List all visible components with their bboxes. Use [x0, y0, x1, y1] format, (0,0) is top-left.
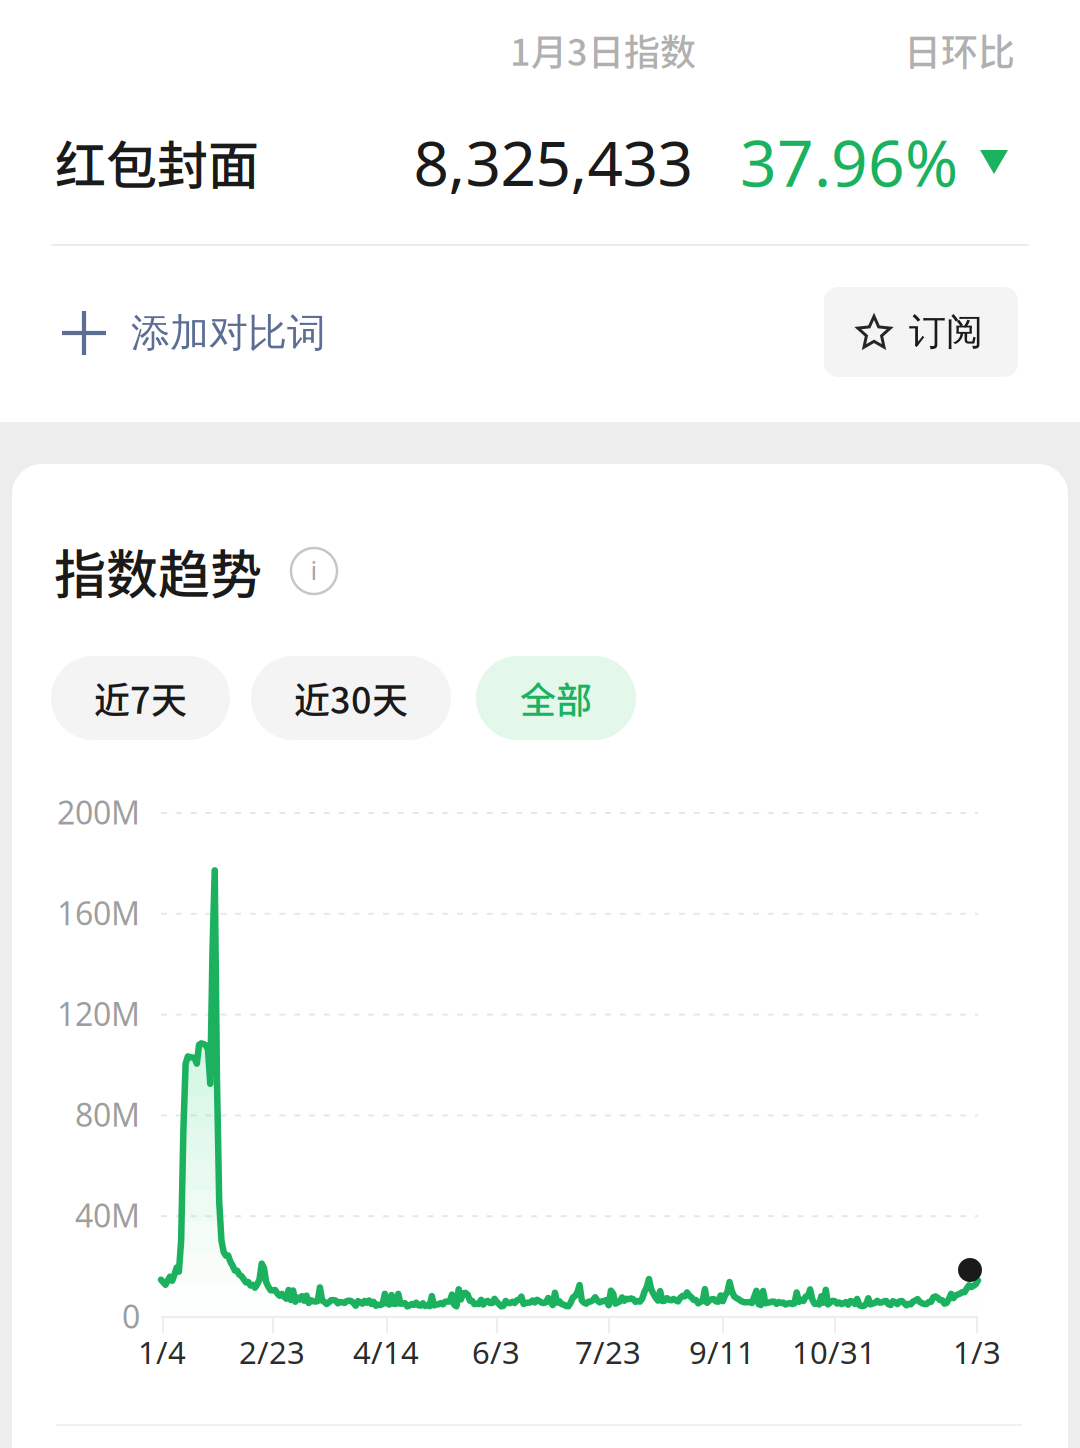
- staticText: 9/11: [689, 1331, 755, 1373]
- button[interactable]: 近30天: [251, 656, 451, 740]
- button[interactable]: 添加对比词: [62, 287, 382, 379]
- staticText: 1/4: [138, 1331, 186, 1373]
- staticText: 1/3: [953, 1331, 1001, 1373]
- staticText: 指数趋势: [54, 533, 262, 609]
- staticText: 近7天: [94, 672, 187, 724]
- button[interactable]: 全部: [476, 656, 636, 740]
- staticText: 红包封面: [55, 125, 259, 199]
- staticText: 7/23: [575, 1331, 641, 1373]
- staticText: 80M: [75, 1093, 140, 1136]
- staticText: 添加对比词: [131, 308, 326, 357]
- staticText: 200M: [57, 790, 140, 834]
- button[interactable]: 近7天: [51, 656, 230, 740]
- button[interactable]: 订阅: [824, 287, 1018, 377]
- staticText: 订阅: [909, 309, 983, 355]
- staticText: 全部: [520, 672, 592, 724]
- staticText: 日环比: [904, 23, 1015, 77]
- staticText: 4/14: [353, 1331, 419, 1373]
- staticText: i: [310, 552, 317, 588]
- staticText: 10/31: [792, 1331, 876, 1373]
- staticText: 8,325,433: [413, 120, 692, 204]
- staticText: 1月3日指数: [510, 24, 696, 76]
- staticText: 120M: [57, 992, 140, 1035]
- staticText: 6/3: [472, 1331, 520, 1373]
- staticText: 近30天: [294, 672, 408, 724]
- staticText: 0: [122, 1294, 140, 1338]
- staticText: 40M: [75, 1193, 140, 1237]
- staticText: 37.96%: [740, 118, 958, 206]
- staticText: 2/23: [239, 1331, 305, 1373]
- staticText: 160M: [57, 891, 140, 935]
